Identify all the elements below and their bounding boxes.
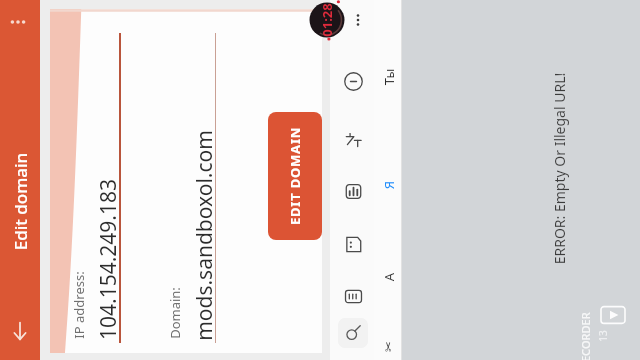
staticText: ✂ (381, 341, 396, 352)
button[interactable]: Translate (340, 125, 366, 151)
button[interactable]: GIF (340, 283, 366, 309)
staticText: 13 (596, 330, 610, 342)
button[interactable]: Search (338, 318, 368, 348)
button[interactable]: Poll (340, 178, 366, 204)
button[interactable]: А (374, 252, 402, 300)
button[interactable]: ✂ (374, 322, 402, 360)
staticText: А (379, 272, 397, 281)
button[interactable]: More (348, 10, 368, 30)
button[interactable]: EDIT DOMAIN (268, 112, 322, 240)
button[interactable]: Minus (340, 68, 366, 94)
staticText: 104.154.249.183 (93, 178, 122, 340)
staticText: mods.sandboxol.com (190, 130, 219, 341)
button[interactable]: Sticker (340, 231, 366, 257)
staticText: EDIT DOMAIN (285, 126, 303, 225)
button[interactable]: Back (5, 316, 35, 346)
button[interactable]: More options (4, 8, 32, 36)
staticText: Edit domain (8, 152, 31, 250)
staticText: Я (379, 180, 397, 189)
button[interactable]: Я (374, 160, 402, 208)
staticText: 01:28 (318, 3, 336, 37)
staticText: Ты (379, 68, 397, 85)
staticText: Domain: (166, 287, 184, 339)
button[interactable]: Ты (374, 52, 402, 100)
staticText: ERROR: Empty Or Illegal URL! (549, 72, 568, 264)
staticText: IP address: (70, 271, 88, 339)
staticText: V RECORDER (578, 312, 593, 360)
